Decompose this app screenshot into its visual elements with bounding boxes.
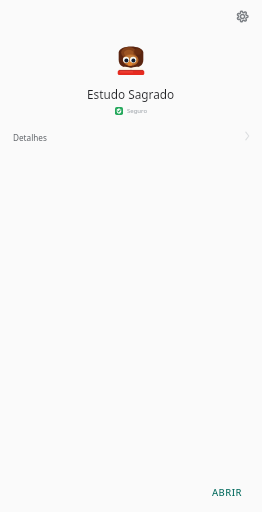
staticText: ABRIR [212, 486, 242, 499]
button[interactable]: Detalhes [0, 124, 262, 148]
staticText: Estudo Sagrado [87, 86, 175, 102]
staticText: Detalhes [13, 132, 47, 143]
button[interactable]: Settings [230, 4, 254, 28]
staticText: Seguro [127, 107, 148, 115]
button[interactable]: ABRIR [206, 482, 248, 503]
